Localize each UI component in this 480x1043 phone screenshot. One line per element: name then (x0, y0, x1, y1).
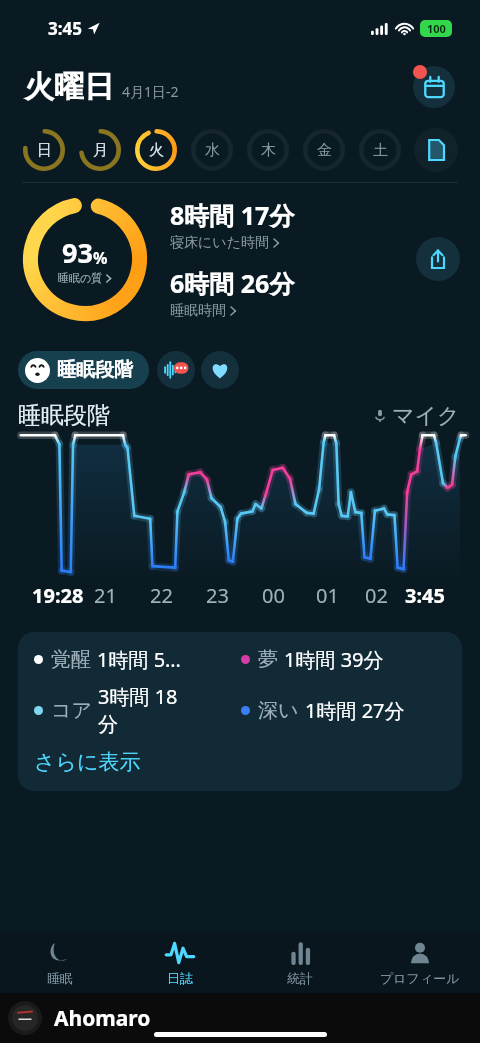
button[interactable]: 睡眠 (0, 931, 120, 993)
staticText: マイク (392, 402, 460, 430)
staticText: 1時間 27分 (305, 697, 405, 724)
staticText: 夢 (258, 647, 278, 672)
staticText: コア (51, 698, 92, 723)
button[interactable]: プロフィール (360, 931, 480, 993)
button[interactable]: 日 (16, 122, 72, 178)
staticText: 3:45 (405, 582, 445, 609)
staticText: 火 (149, 141, 164, 160)
staticText: 日 (37, 141, 52, 160)
button[interactable]: 火 (128, 122, 184, 178)
staticText: 覚醒 (51, 647, 91, 672)
staticText: 火曜日 (24, 68, 114, 106)
button[interactable]: 水 (184, 122, 240, 178)
staticText: 睡眠段階 (57, 358, 133, 382)
button[interactable]: 土 (352, 122, 408, 178)
staticText: 寝床にいた時間 (170, 234, 269, 252)
button[interactable]: マイク (373, 402, 460, 430)
button[interactable]: 6時間 26分 (170, 266, 295, 320)
button[interactable]: 8時間 17分 (170, 198, 295, 252)
staticText: 00 (262, 582, 285, 609)
button[interactable]: 金 (296, 122, 352, 178)
staticText: 日誌 (167, 970, 193, 986)
button[interactable]: 木 (240, 122, 296, 178)
button[interactable]: さらに表示 (34, 749, 141, 775)
button[interactable]: Audio notes (157, 351, 195, 389)
staticText: 1時間 39分 (284, 646, 384, 673)
staticText: 4月1日-2 (122, 82, 179, 101)
button[interactable]: 統計 (240, 931, 360, 993)
staticText: 睡眠 (47, 970, 73, 986)
button[interactable]: Document (408, 122, 464, 178)
staticText: 02 (365, 582, 388, 609)
button[interactable]: Heart rate (201, 351, 239, 389)
staticText: 01 (316, 582, 339, 609)
button[interactable]: Share (416, 237, 460, 281)
staticText: 100 (427, 21, 446, 36)
staticText: 21 (94, 582, 117, 609)
staticText: プロフィール (380, 970, 460, 986)
staticText: 睡眠段階 (18, 401, 110, 430)
staticText: 統計 (287, 970, 313, 986)
button[interactable]: 覚醒 (18, 632, 462, 791)
staticText: 土 (373, 141, 388, 160)
staticText: 93 (62, 234, 93, 271)
staticText: 3:45 (48, 17, 82, 40)
button[interactable]: Calendar (410, 63, 458, 111)
staticText: 3時間 18分 (98, 683, 182, 737)
staticText: 金 (317, 141, 332, 160)
staticText: 19:28 (32, 582, 84, 609)
staticText: 深い (258, 698, 299, 723)
staticText: 1時間 5… (97, 646, 181, 673)
staticText: 木 (261, 141, 276, 160)
staticText: さらに表示 (34, 749, 141, 775)
button[interactable]: 日誌 (120, 931, 240, 993)
staticText: 8時間 17分 (170, 198, 295, 232)
staticText: 23 (206, 582, 229, 609)
button[interactable]: 月 (72, 122, 128, 178)
staticText: % (93, 247, 108, 269)
staticText: 睡眠時間 (170, 302, 226, 320)
button[interactable]: 93 (22, 196, 148, 322)
staticText: 22 (150, 582, 173, 609)
staticText: 睡眠の質 (58, 271, 103, 285)
button[interactable]: 睡眠段階 (18, 351, 149, 389)
staticText: 水 (205, 141, 220, 160)
staticText: 6時間 26分 (170, 266, 295, 300)
staticText: 月 (93, 141, 108, 160)
staticText: Ahomaro (54, 1004, 151, 1033)
